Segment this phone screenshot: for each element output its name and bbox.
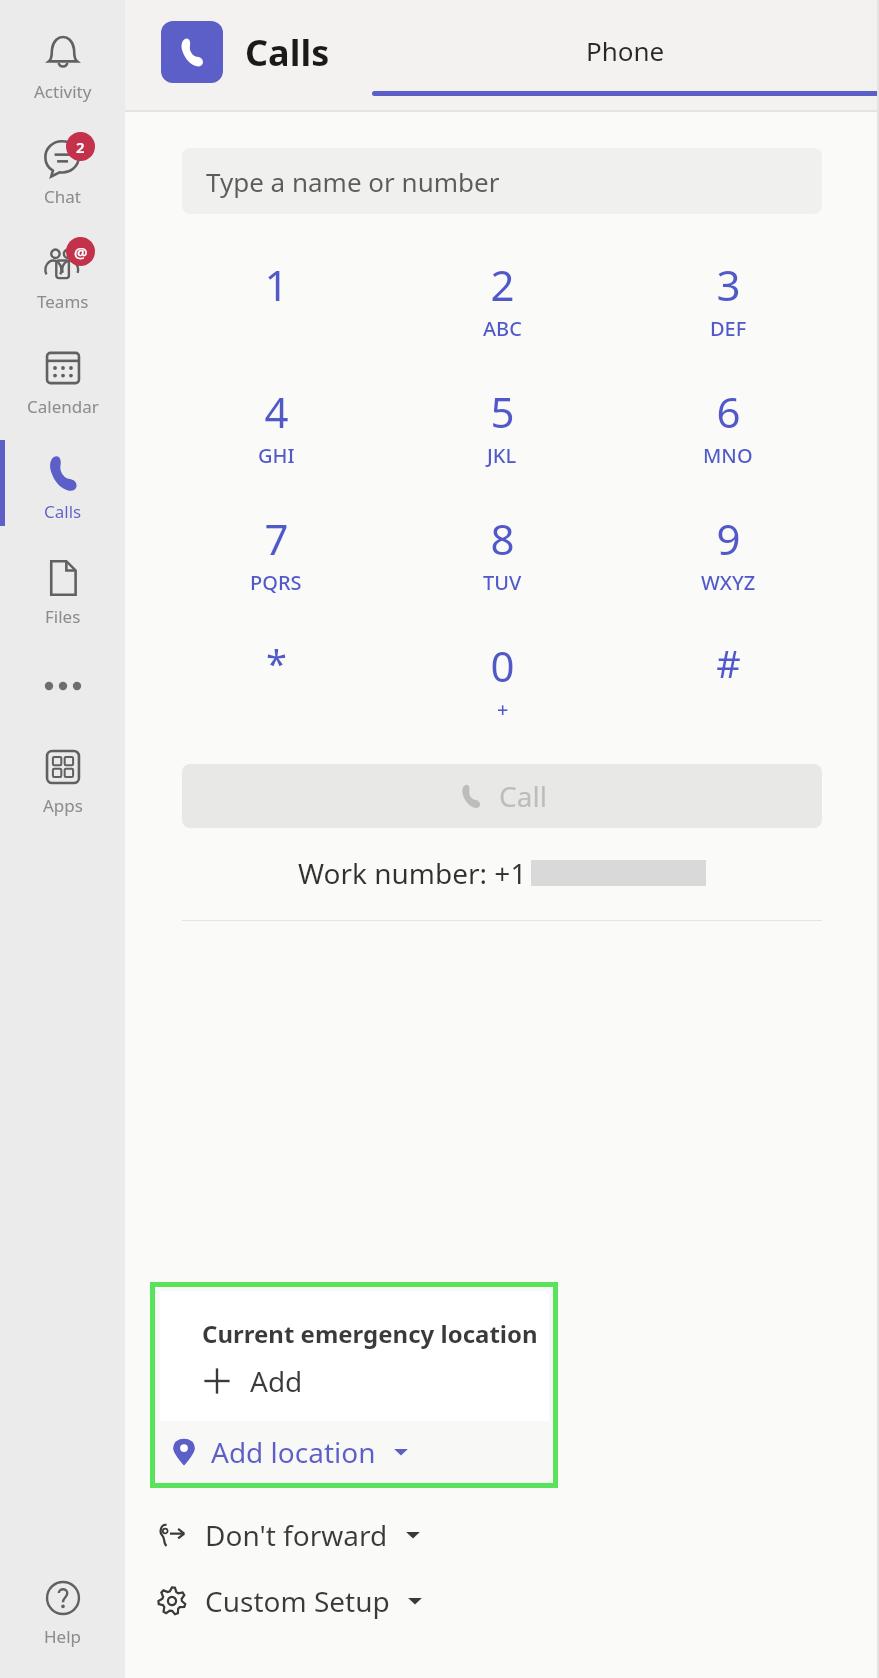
- staticText: Work number: +1: [298, 854, 527, 892]
- button[interactable]: Calendar: [0, 329, 125, 434]
- button[interactable]: Files: [0, 539, 125, 644]
- button[interactable]: 1: [163, 238, 389, 365]
- button[interactable]: Help: [0, 1559, 125, 1664]
- button[interactable]: 6: [615, 365, 841, 492]
- button[interactable]: Custom Setup: [155, 1570, 575, 1632]
- staticText: 7: [264, 510, 289, 567]
- button[interactable]: 2: [0, 119, 125, 224]
- staticText: Don't forward: [205, 1516, 388, 1554]
- staticText: Help: [44, 1625, 82, 1648]
- staticText: MNO: [703, 442, 753, 469]
- staticText: Chat: [44, 185, 81, 208]
- button[interactable]: Activity: [0, 14, 125, 119]
- staticText: Phone: [586, 33, 665, 68]
- staticText: Calls: [245, 28, 330, 77]
- button[interactable]: Apps: [0, 728, 125, 833]
- button[interactable]: Current emergency location: [160, 1291, 549, 1421]
- button[interactable]: Phone: [372, 0, 879, 112]
- staticText: Teams: [37, 290, 89, 313]
- staticText: Apps: [43, 794, 83, 817]
- button[interactable]: 8: [389, 492, 615, 619]
- staticText: 8: [490, 510, 515, 567]
- staticText: Type a name or number: [206, 164, 500, 199]
- staticText: DEF: [710, 315, 747, 342]
- staticText: ABC: [483, 315, 522, 342]
- staticText: Activity: [34, 80, 92, 103]
- staticText: PQRS: [250, 569, 302, 596]
- staticText: Add: [250, 1362, 303, 1400]
- staticText: 2: [76, 137, 85, 157]
- button[interactable]: 9: [615, 492, 841, 619]
- button[interactable]: 7: [163, 492, 389, 619]
- staticText: WXYZ: [701, 569, 756, 596]
- staticText: 9: [716, 510, 741, 567]
- staticText: Calendar: [27, 395, 99, 418]
- button[interactable]: 5: [389, 365, 615, 492]
- staticText: TUV: [483, 569, 522, 596]
- button[interactable]: 2: [389, 238, 615, 365]
- button[interactable]: 3: [615, 238, 841, 365]
- staticText: *: [266, 637, 287, 689]
- staticText: 3: [716, 256, 741, 313]
- staticText: 0: [490, 637, 515, 694]
- staticText: #: [716, 637, 741, 689]
- button[interactable]: 4: [163, 365, 389, 492]
- button[interactable]: Calls app: [161, 21, 223, 83]
- button[interactable]: *: [163, 619, 389, 746]
- staticText: 2: [490, 256, 515, 313]
- staticText: +: [497, 696, 509, 723]
- button[interactable]: Add location: [155, 1421, 553, 1483]
- staticText: 4: [264, 383, 289, 440]
- staticText: GHI: [258, 442, 295, 469]
- staticText: JKL: [487, 442, 517, 469]
- button[interactable]: @: [0, 224, 125, 329]
- staticText: 5: [490, 383, 515, 440]
- button[interactable]: Don't forward: [155, 1504, 575, 1566]
- staticText: Current emergency location: [202, 1317, 538, 1350]
- staticText: Call: [499, 777, 547, 815]
- button[interactable]: Call: [182, 764, 822, 828]
- button[interactable]: Calls: [0, 434, 125, 539]
- button[interactable]: Type a name or number: [182, 148, 822, 214]
- button[interactable]: More apps: [0, 644, 125, 728]
- staticText: Files: [45, 605, 81, 628]
- staticText: Add location: [211, 1433, 376, 1471]
- button[interactable]: 0: [389, 619, 615, 746]
- staticText: 1: [264, 256, 289, 313]
- staticText: @: [74, 242, 88, 262]
- staticText: 6: [716, 383, 741, 440]
- staticText: Calls: [44, 500, 82, 523]
- button[interactable]: #: [615, 619, 841, 746]
- staticText: Custom Setup: [205, 1582, 390, 1620]
